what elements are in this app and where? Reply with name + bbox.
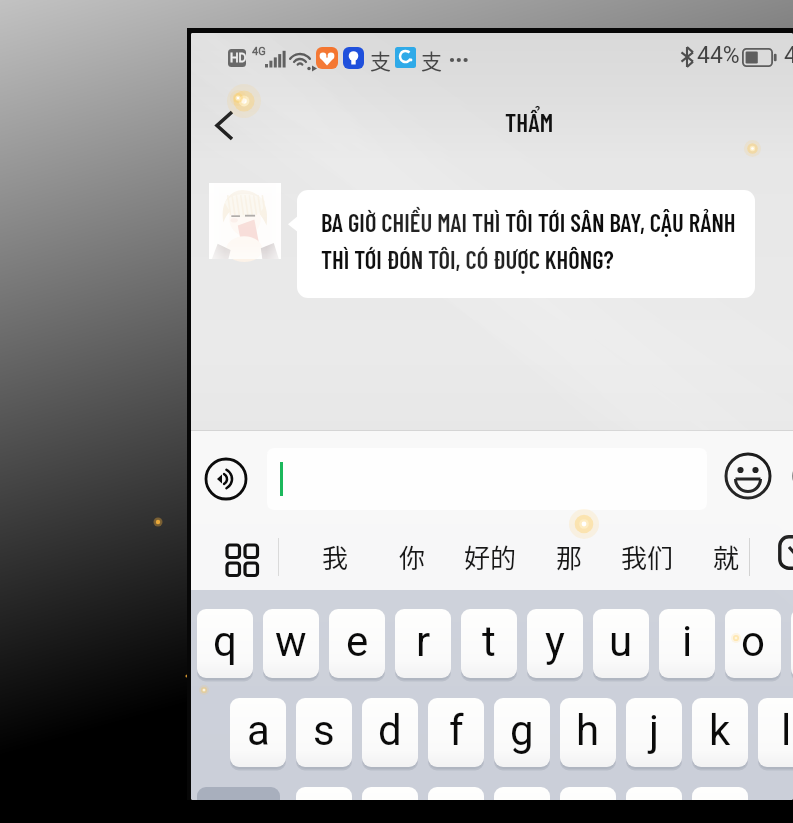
button[interactable]: 那 — [547, 532, 591, 582]
staticText: r — [416, 617, 431, 666]
staticText: i — [682, 617, 693, 666]
staticText: l — [781, 706, 792, 755]
button[interactable]: 就 — [704, 532, 748, 582]
staticText: BA GIỜ CHIỀU MAI THÌ TÔI TỚI SÂN BAY, CẬ… — [321, 207, 736, 237]
staticText: 4G — [252, 45, 266, 58]
button[interactable]: t — [461, 609, 517, 678]
staticText: f — [449, 706, 464, 755]
staticText: HD — [230, 51, 247, 65]
staticText: u — [609, 617, 633, 666]
staticText: 支 — [370, 45, 391, 75]
staticText: 我 — [322, 538, 349, 576]
staticText: s — [313, 706, 335, 755]
button[interactable]: n — [626, 787, 682, 800]
button[interactable]: w — [263, 609, 319, 678]
staticText: 支 — [421, 45, 442, 75]
button[interactable]: k — [692, 698, 748, 767]
button[interactable]: More options — [792, 452, 793, 500]
button[interactable]: p — [791, 609, 793, 678]
staticText: q — [213, 617, 237, 666]
button[interactable]: o — [725, 609, 781, 678]
button[interactable]: v — [494, 787, 550, 800]
button[interactable]: a — [230, 698, 286, 767]
staticText: t — [482, 617, 496, 666]
button[interactable]: i — [659, 609, 715, 678]
staticText: 好的 — [464, 538, 517, 576]
staticText: o — [741, 617, 765, 666]
button[interactable]: d — [362, 698, 418, 767]
button[interactable]: l — [758, 698, 793, 767]
button[interactable]: g — [494, 698, 550, 767]
button[interactable]: m — [692, 787, 748, 800]
button[interactable] — [267, 448, 707, 510]
button[interactable]: r — [395, 609, 451, 678]
button[interactable]: Back — [203, 103, 247, 147]
button[interactable]: Voice input — [205, 458, 247, 500]
button[interactable]: z — [296, 787, 352, 800]
staticText: k — [709, 706, 731, 755]
staticText: w — [275, 617, 307, 666]
staticText: 我们 — [621, 538, 674, 576]
button[interactable]: 我们 — [616, 532, 678, 582]
button[interactable]: 好的 — [459, 532, 521, 582]
staticText: 44% — [697, 42, 740, 69]
button[interactable]: j — [626, 698, 682, 767]
button[interactable]: Keyboard apps — [219, 536, 265, 582]
staticText: a — [247, 706, 270, 755]
staticText: THẨM — [505, 107, 554, 137]
button[interactable]: h — [560, 698, 616, 767]
staticText: 4 — [784, 42, 793, 69]
button[interactable]: b — [560, 787, 616, 800]
button[interactable]: BA GIỜ CHIỀU MAI THÌ TÔI TỚI SÂN BAY, CẬ… — [297, 190, 755, 298]
staticText: 就 — [713, 538, 740, 576]
staticText: e — [346, 617, 369, 666]
staticText: y — [545, 617, 565, 666]
button[interactable]: e — [329, 609, 385, 678]
button[interactable]: 你 — [390, 532, 434, 582]
button[interactable]: Emoji — [724, 452, 772, 500]
staticText: d — [378, 706, 402, 755]
button[interactable]: y — [527, 609, 583, 678]
button[interactable]: u — [593, 609, 649, 678]
button[interactable]: f — [428, 698, 484, 767]
button[interactable]: Hide keyboard — [778, 535, 793, 570]
button[interactable]: Shift — [197, 787, 280, 800]
staticText: g — [510, 706, 534, 755]
button[interactable]: c — [428, 787, 484, 800]
button[interactable]: s — [296, 698, 352, 767]
button[interactable]: x — [362, 787, 418, 800]
staticText: THÌ TỚI ĐÓN TÔI, CÓ ĐƯỢC KHÔNG? — [321, 244, 614, 274]
staticText: j — [649, 706, 660, 755]
button[interactable]: 我 — [313, 532, 357, 582]
staticText: 那 — [556, 538, 583, 576]
staticText: 你 — [399, 538, 426, 576]
staticText: h — [576, 706, 600, 755]
button[interactable]: q — [197, 609, 253, 678]
